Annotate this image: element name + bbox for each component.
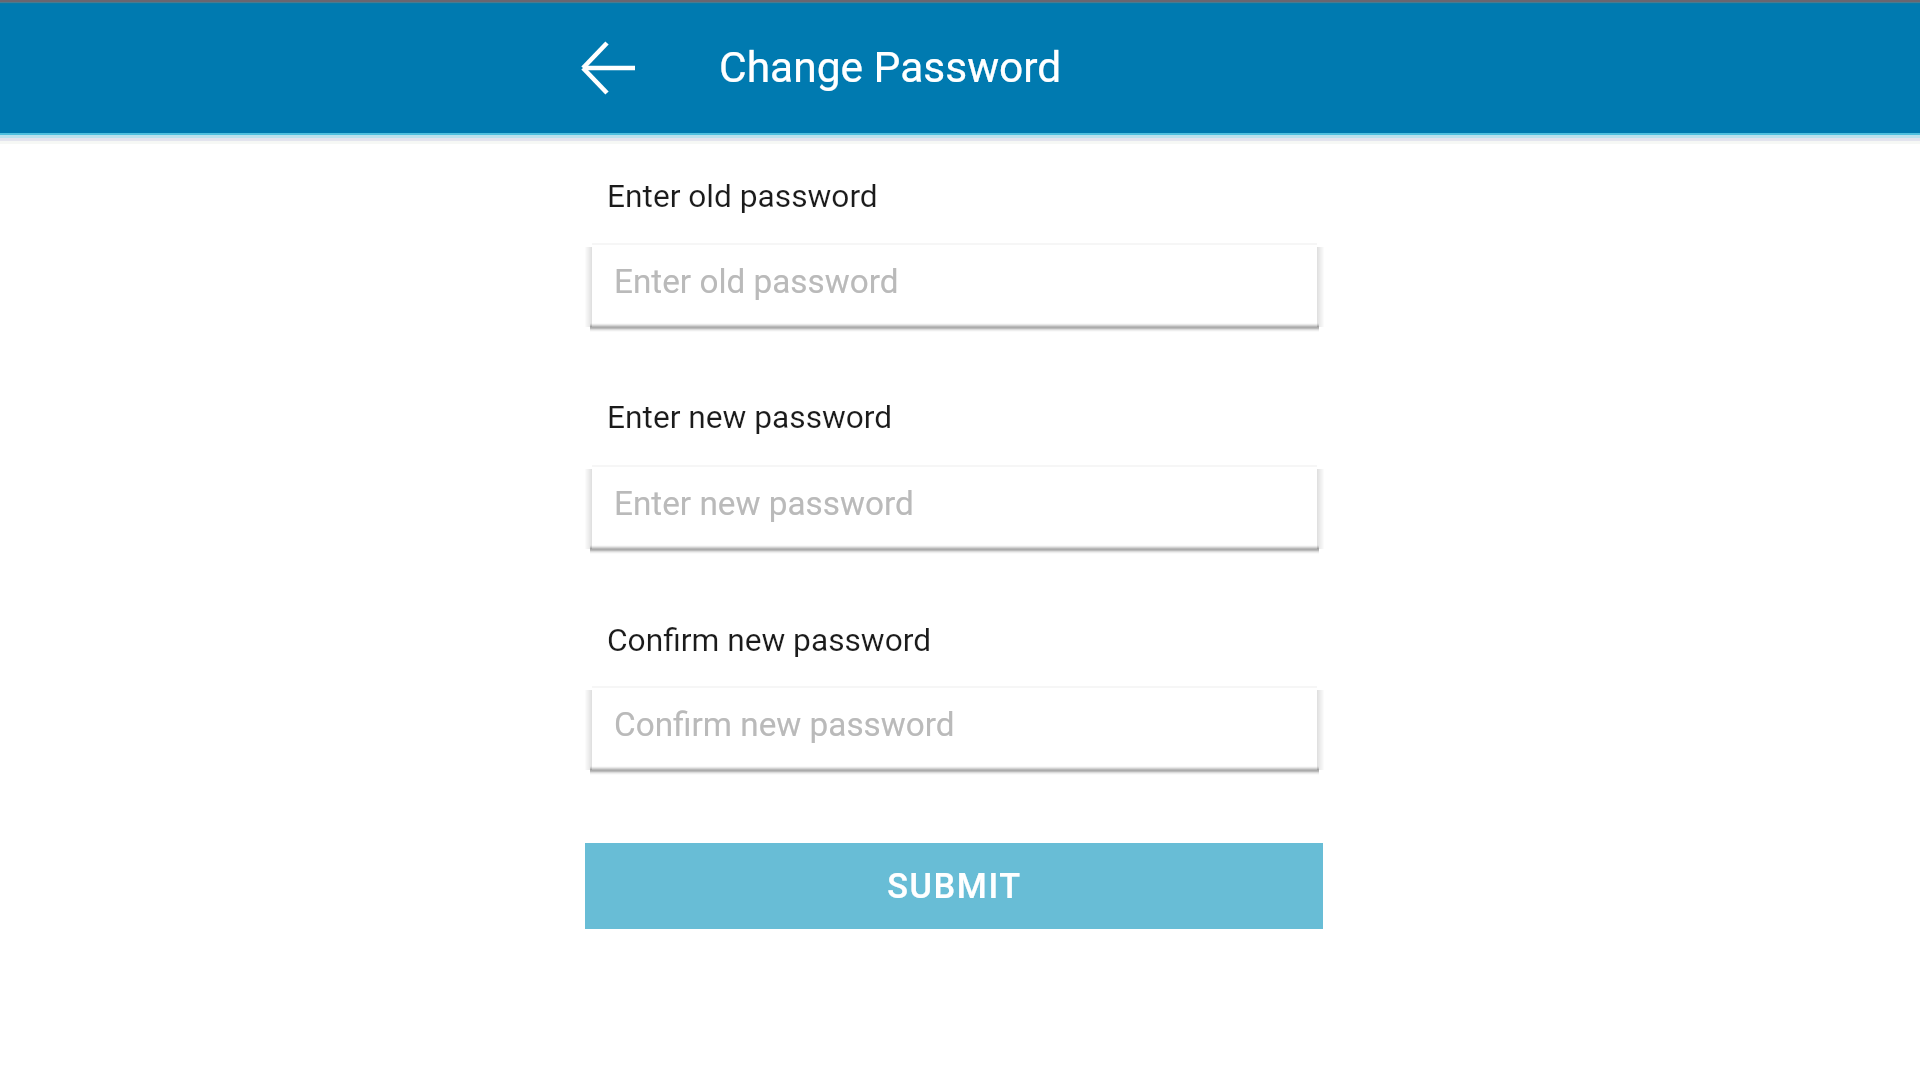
button[interactable]: Confirm new password (584, 682, 1325, 778)
staticText: Enter old password (614, 262, 899, 301)
staticText: Enter old password (607, 178, 878, 215)
button[interactable]: Enter new password (584, 461, 1325, 557)
staticText: SUBMIT (887, 866, 1022, 906)
button[interactable]: SUBMIT (585, 843, 1323, 929)
staticText: Confirm new password (607, 622, 932, 659)
button[interactable]: Enter old password (584, 239, 1325, 335)
staticText: Enter new password (607, 399, 893, 436)
button[interactable]: Back (576, 35, 642, 101)
staticText: Change Password (719, 43, 1062, 93)
staticText: Confirm new password (614, 705, 955, 744)
staticText: Enter new password (614, 484, 914, 523)
